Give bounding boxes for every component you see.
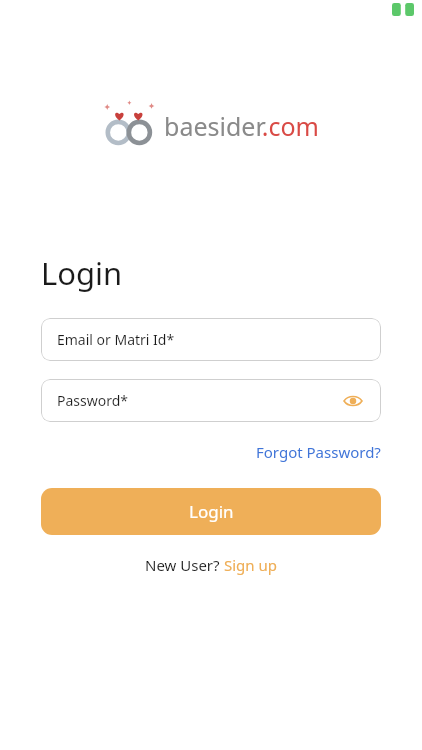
button[interactable]: Sign up	[224, 555, 277, 575]
staticText: New User?	[145, 555, 224, 575]
staticText: Sign up	[224, 555, 277, 575]
staticText: Forgot Password?	[256, 442, 381, 462]
staticText: Password*	[57, 391, 129, 410]
staticText: Login	[41, 252, 123, 294]
staticText: Email or Matri Id*	[57, 330, 175, 349]
staticText: baesider.com	[164, 109, 319, 143]
button[interactable]: Login	[41, 488, 381, 535]
staticText: Login	[189, 500, 234, 523]
button[interactable]: Show password	[341, 389, 365, 413]
button[interactable]: Password*	[41, 379, 381, 422]
button[interactable]: Email or Matri Id*	[41, 318, 381, 361]
button[interactable]: Forgot Password?	[256, 438, 381, 466]
